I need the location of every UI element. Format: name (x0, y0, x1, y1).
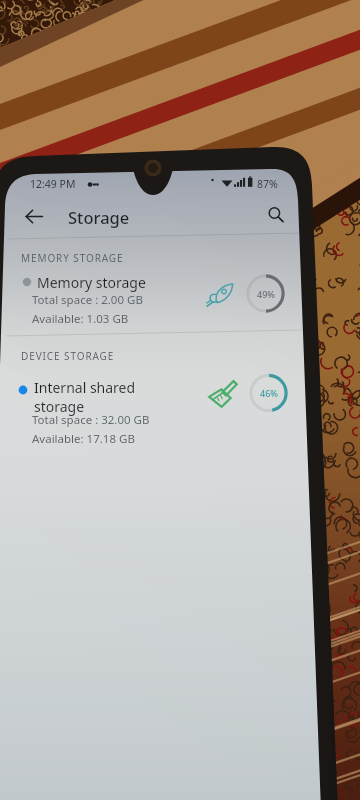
staticText: Total space : 2.00 GB (32, 292, 143, 308)
staticText: Memory storage (37, 273, 146, 292)
button[interactable]: Search (262, 201, 290, 229)
staticText: Available: 17.18 GB (32, 431, 135, 447)
staticText: MEMORY STORAGE (21, 251, 124, 265)
staticText: 46% (260, 387, 278, 399)
staticText: Total space : 32.00 GB (32, 412, 150, 428)
button[interactable]: MEMORY STORAGE (21, 251, 124, 265)
staticText: 49% (257, 288, 275, 300)
staticText: Available: 1.03 GB (32, 311, 129, 327)
staticText: 12:49 PM (30, 177, 76, 191)
staticText: Internal shared (34, 378, 136, 397)
button[interactable]: Back (17, 199, 51, 233)
button[interactable]: DEVICE STORAGE (21, 349, 115, 363)
staticText: DEVICE STORAGE (21, 349, 115, 363)
staticText: Storage (68, 206, 130, 228)
staticText: storage (34, 397, 85, 416)
staticText: 87% (257, 177, 278, 191)
